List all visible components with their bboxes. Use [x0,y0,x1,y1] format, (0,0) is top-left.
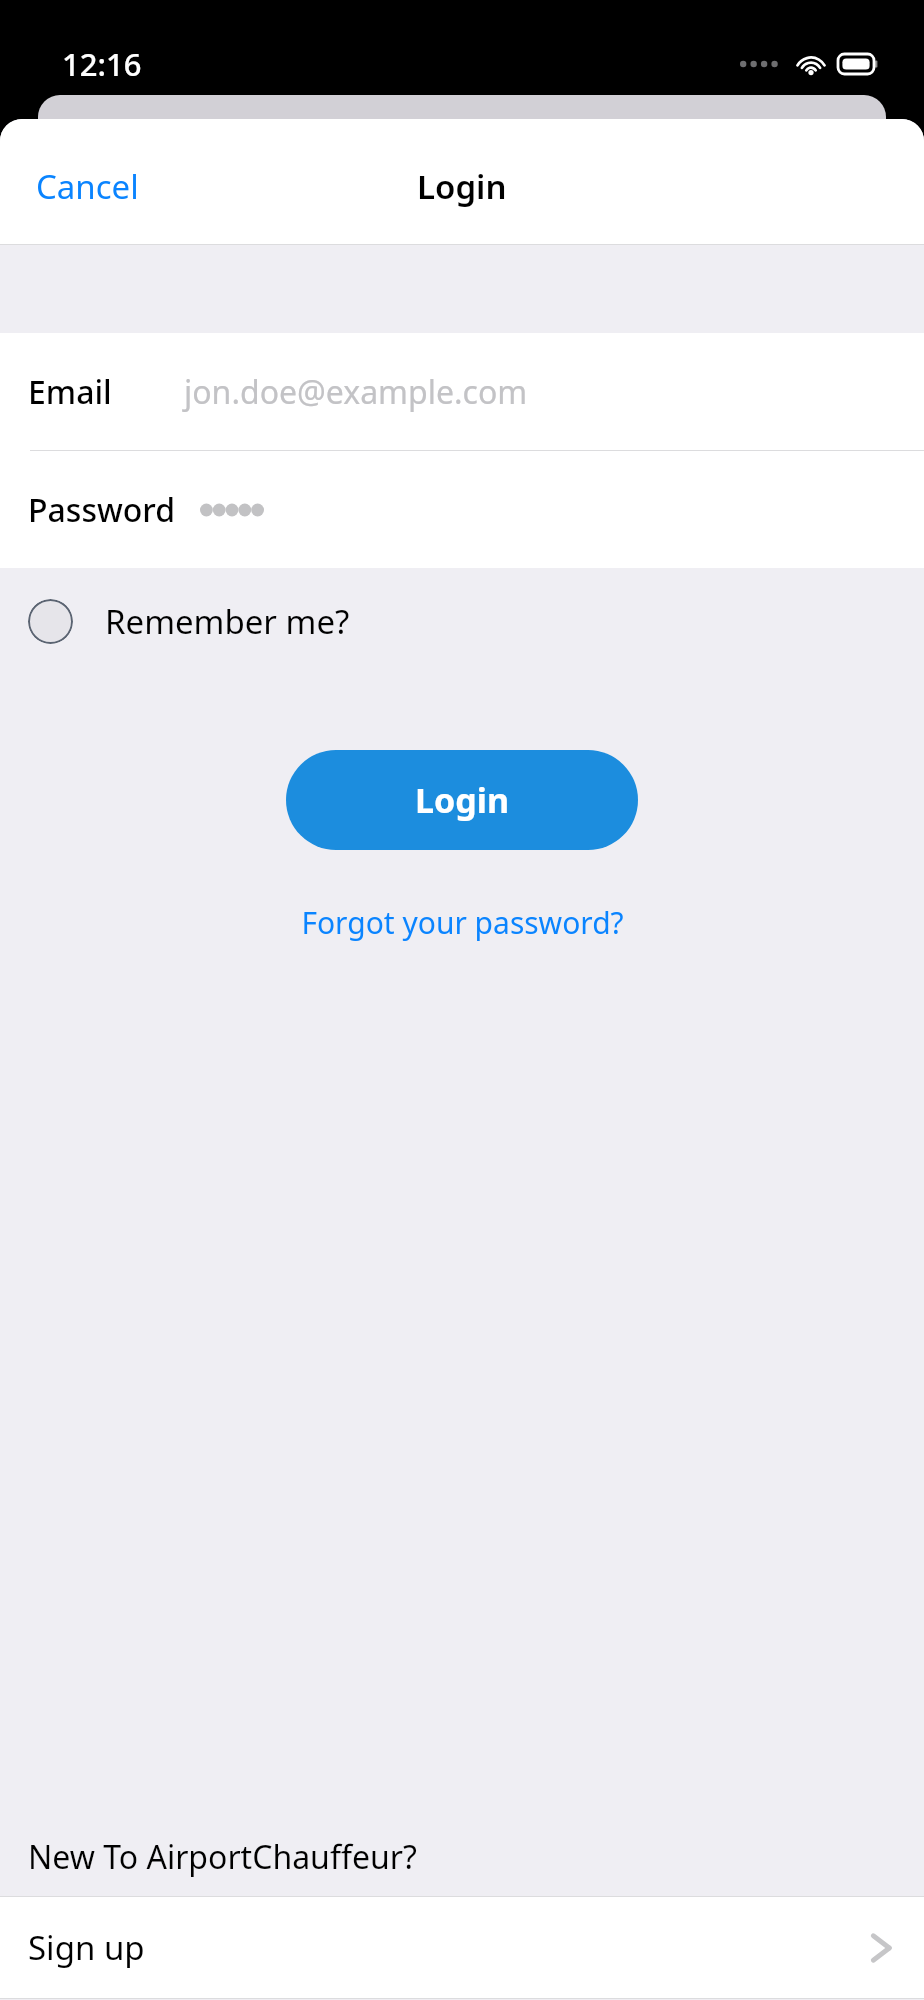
staticText: Email [28,370,112,414]
button[interactable]: Email [0,333,924,450]
button[interactable]: Cancel [0,150,175,223]
staticText: New To AirportChauffeur? [28,1835,417,1879]
staticText: jon.doe@example.com [184,370,528,414]
button[interactable]: Login [286,750,638,850]
button[interactable]: Forgot your password? [277,892,648,953]
staticText: Remember me? [105,599,350,644]
staticText: Login [417,164,507,209]
staticText: Forgot your password? [301,902,624,943]
staticText: Password [28,488,176,532]
other: Sign up [870,1930,892,1966]
staticText: Cancel [36,164,139,209]
staticText: 12:16 [62,43,142,85]
staticText: Login [415,777,510,823]
button[interactable]: Sign up [0,1897,924,1998]
button[interactable]: Password [0,451,924,568]
staticText: Sign up [28,1925,145,1970]
button[interactable]: Remember me? [0,568,924,674]
